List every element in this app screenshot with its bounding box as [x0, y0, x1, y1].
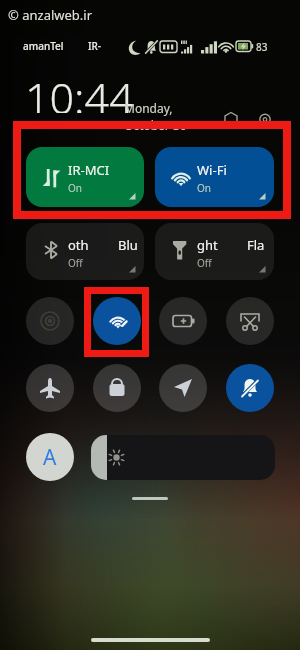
button[interactable]: IR-MCI — [26, 147, 144, 207]
button[interactable]: Screenshot — [226, 297, 274, 345]
button[interactable]: Screen cast — [26, 297, 74, 345]
staticText: oth — [68, 236, 89, 254]
button[interactable]: A — [26, 433, 74, 481]
staticText: 10:44 — [25, 68, 134, 113]
button[interactable]: Airplane mode — [26, 364, 74, 412]
button[interactable]: Screen lock — [93, 364, 141, 412]
staticText: October 30 — [124, 117, 187, 133]
staticText: On — [68, 181, 82, 195]
staticText: 83 — [256, 40, 268, 54]
button[interactable]: oth — [26, 223, 144, 280]
staticText: Wi-Fi — [197, 161, 227, 179]
button[interactable]: Do not disturb — [226, 364, 274, 412]
button[interactable] — [91, 435, 275, 480]
button[interactable]: Wi-Fi — [155, 147, 274, 207]
staticText: On — [197, 181, 211, 195]
staticText: Off — [197, 256, 212, 270]
staticText: IR-MCI — [68, 161, 110, 179]
staticText: ght — [197, 236, 218, 254]
button[interactable]: Battery saver — [159, 297, 207, 345]
staticText: © anzalweb.ir — [8, 6, 93, 24]
staticText: A — [43, 443, 57, 472]
button[interactable]: Wi-Fi — [93, 297, 141, 345]
staticText: Off — [68, 256, 83, 270]
button[interactable]: ght — [155, 223, 274, 280]
staticText: Fla — [247, 236, 265, 254]
staticText: Monday, — [124, 100, 173, 116]
button[interactable]: Location — [159, 364, 207, 412]
staticText: Blu — [118, 236, 138, 254]
staticText: amanTel — [23, 39, 64, 53]
staticText: IR- — [88, 39, 102, 53]
